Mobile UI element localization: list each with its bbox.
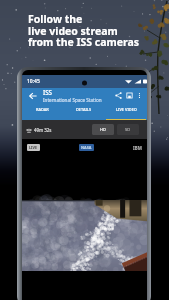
staticText: LIVE VIDEO [116, 107, 137, 112]
button[interactable]: DETAILS [63, 103, 105, 116]
button[interactable]: Share [113, 90, 124, 101]
staticText: IBM [133, 145, 142, 151]
staticText: DETAILS [76, 107, 92, 112]
staticText: SD [125, 127, 131, 132]
button[interactable]: More options [135, 91, 144, 100]
button[interactable]: HD [92, 124, 114, 135]
staticText: 10:45 [27, 78, 40, 85]
button[interactable]: SD [117, 124, 139, 135]
staticText: International Space Station [43, 97, 102, 103]
staticText: RADAR [36, 107, 49, 112]
button[interactable]: Save [124, 90, 135, 101]
staticText: LIVE [29, 145, 38, 150]
button[interactable]: RADAR [22, 103, 63, 116]
staticText: Follow the live video stream from the IS… [28, 12, 140, 49]
staticText: NASA [81, 145, 92, 150]
button[interactable]: Back [26, 89, 39, 102]
staticText: HD [100, 127, 106, 132]
staticText: ISS [43, 88, 52, 96]
button[interactable]: LIVE VIDEO [105, 103, 147, 116]
staticText: 49m 32s [34, 127, 52, 133]
